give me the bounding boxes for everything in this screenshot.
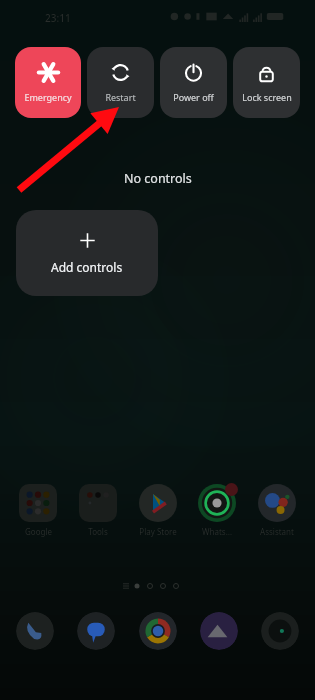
button[interactable]: Play Store [134,484,182,537]
staticText: Tools [88,526,108,537]
button[interactable]: Tools [74,484,122,537]
button[interactable]: Lock screen [233,47,300,118]
button[interactable] [261,612,299,650]
button[interactable]: Power off [160,47,227,118]
staticText: 23:11 [45,11,71,25]
staticText: Google [25,526,52,537]
staticText: Add controls [51,259,123,275]
button[interactable] [139,612,177,650]
button[interactable]: Add controls [16,210,158,296]
button[interactable] [77,612,115,650]
button[interactable] [16,612,54,650]
staticText: No controls [124,170,192,187]
staticText: Whats… [202,526,232,537]
button[interactable]: Restart [87,47,154,118]
staticText: Emergency [24,91,72,103]
button[interactable]: Whats… [193,484,241,537]
button[interactable] [200,612,238,650]
button[interactable]: Assistant [253,484,301,537]
staticText: Play Store [139,526,177,537]
staticText: Power off [173,91,214,103]
staticText: Lock screen [242,91,292,103]
staticText: Assistant [260,526,294,537]
staticText: Restart [105,91,136,103]
button[interactable]: Emergency [15,47,81,118]
button[interactable]: Google [14,484,62,537]
